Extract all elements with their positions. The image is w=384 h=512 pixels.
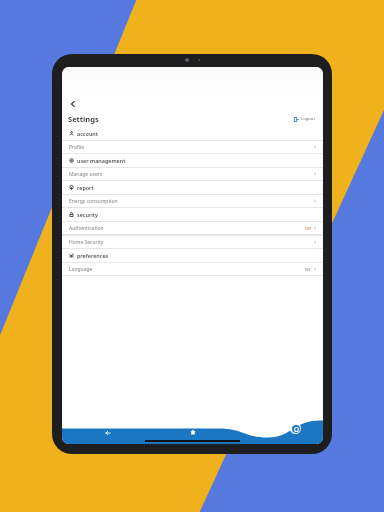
button[interactable]: account [62,127,323,140]
staticText: report [77,184,94,191]
staticText: preferences [77,252,109,259]
staticText: Profile [69,144,85,151]
button[interactable]: Settings [290,423,301,434]
button[interactable]: Manage users [62,168,323,180]
button[interactable]: report [62,181,323,194]
button[interactable]: Back [102,427,114,439]
staticText: user management [77,157,126,164]
button[interactable]: preferences [62,249,323,262]
button[interactable]: Logout [292,114,317,124]
button[interactable]: security [62,208,323,221]
button[interactable]: Home Security [62,236,323,248]
staticText: EN [305,267,311,272]
staticText: Energy consumption [69,198,118,205]
button[interactable]: Home [187,426,199,438]
staticText: Logout [301,116,315,122]
button[interactable]: Energy consumption [62,195,323,207]
staticText: Off [305,226,311,231]
staticText: security [77,211,98,218]
button[interactable]: Profile [62,141,323,153]
button[interactable]: Back [66,97,80,111]
staticText: Settings [68,114,99,124]
staticText: Manage users [69,171,103,178]
button[interactable]: Authentication [62,222,323,234]
staticText: account [77,130,98,137]
button[interactable]: user management [62,154,323,167]
staticText: Language [69,266,93,273]
button[interactable]: Language [62,263,323,275]
staticText: Authentication [69,225,104,232]
staticText: Home Security [69,239,104,246]
